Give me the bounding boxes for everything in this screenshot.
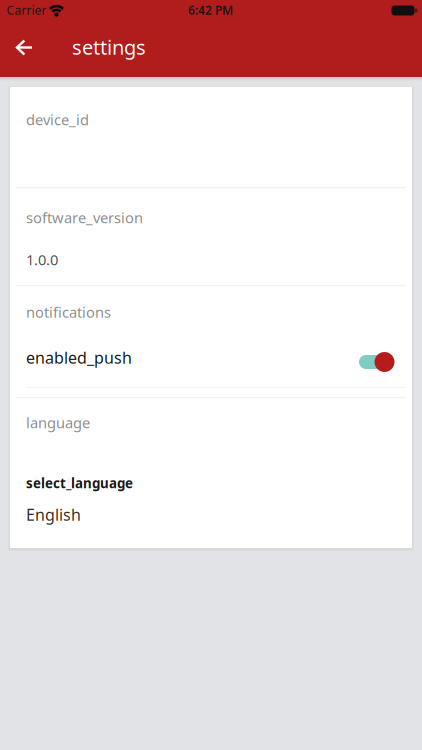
staticText: select_language (26, 474, 133, 492)
staticText: device_id (26, 110, 89, 129)
staticText: software_version (26, 208, 143, 227)
staticText: notifications (26, 302, 111, 322)
staticText: settings (72, 34, 146, 60)
button[interactable]: Back (2, 25, 46, 69)
staticText: 6:42 PM (188, 2, 233, 18)
staticText: enabled_push (26, 347, 132, 368)
staticText: English (26, 504, 81, 525)
staticText: 1.0.0 (26, 250, 58, 269)
button[interactable]: select_language (16, 459, 406, 535)
button[interactable]: enabled_push (16, 337, 406, 387)
staticText: Carrier (6, 2, 46, 18)
staticText: language (26, 413, 90, 432)
